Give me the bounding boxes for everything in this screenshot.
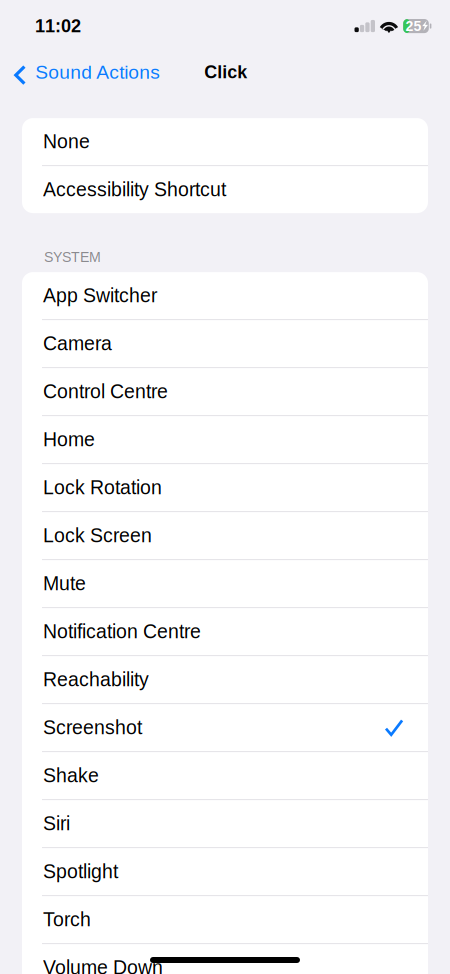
staticText: Accessibility Shortcut	[43, 179, 226, 200]
staticText: Click	[204, 62, 247, 82]
staticText: App Switcher	[43, 285, 157, 306]
staticText: SYSTEM	[44, 249, 101, 265]
button[interactable]: Lock Rotation	[22, 464, 428, 511]
button[interactable]: None	[22, 118, 428, 165]
staticText: Lock Screen	[43, 525, 152, 546]
staticText: Screenshot	[43, 717, 142, 738]
staticText: Control Centre	[43, 381, 168, 402]
staticText: Mute	[43, 573, 86, 594]
staticText: Torch	[43, 909, 91, 930]
button[interactable]: Sound Actions	[0, 51, 160, 93]
staticText: Reachability	[43, 669, 149, 690]
button[interactable]: Camera	[22, 320, 428, 367]
button[interactable]: Accessibility Shortcut	[22, 166, 428, 213]
staticText: Notification Centre	[43, 621, 201, 642]
button[interactable]: Reachability	[22, 656, 428, 703]
staticText: 25	[405, 18, 421, 34]
staticText: Sound Actions	[35, 61, 160, 83]
button[interactable]: Shake	[22, 752, 428, 799]
staticText: Spotlight	[43, 861, 118, 882]
button[interactable]: Siri	[22, 800, 428, 847]
staticText: Camera	[43, 333, 112, 354]
button[interactable]: App Switcher	[22, 272, 428, 319]
button[interactable]: Home	[22, 416, 428, 463]
button[interactable]: Notification Centre	[22, 608, 428, 655]
button[interactable]: Lock Screen	[22, 512, 428, 559]
staticText: Shake	[43, 765, 99, 786]
button[interactable]: Mute	[22, 560, 428, 607]
button[interactable]: Spotlight	[22, 848, 428, 895]
button[interactable]: Screenshot	[22, 704, 428, 751]
staticText: Volume Down	[43, 957, 163, 974]
button[interactable]: Control Centre	[22, 368, 428, 415]
staticText: Lock Rotation	[43, 477, 162, 498]
button[interactable]: Volume Down	[22, 944, 428, 974]
button[interactable]: Torch	[22, 896, 428, 943]
staticText: Siri	[43, 813, 70, 834]
staticText: None	[43, 131, 90, 152]
staticText: Home	[43, 429, 95, 450]
staticText: 11:02	[35, 16, 81, 36]
